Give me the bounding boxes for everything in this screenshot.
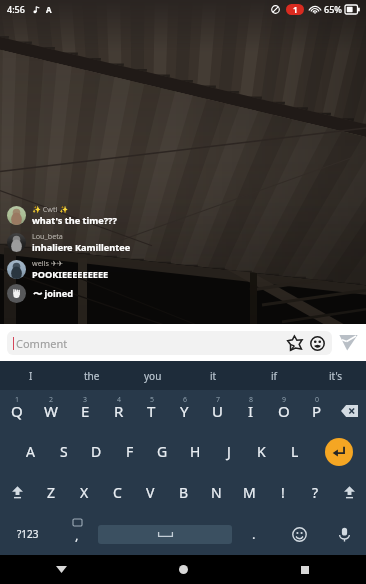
button[interactable]: P [300,390,333,431]
button[interactable]: B [167,472,200,513]
button[interactable]: Emoji [276,513,322,555]
button[interactable]: Comment [7,331,332,355]
button[interactable]: F [113,431,146,472]
staticText: K [257,442,266,461]
button[interactable]: Home [122,555,244,584]
staticText: M [243,483,256,502]
button[interactable]: Emoji [310,336,325,351]
button[interactable]: T [135,390,168,431]
button[interactable]: O [267,390,300,431]
staticText: X [80,483,89,502]
button[interactable]: 〜 joined [7,284,74,303]
staticText: I [29,369,33,383]
staticText: 0 [315,395,320,405]
staticText: if [271,369,278,383]
button[interactable]: Stickers [287,335,303,351]
staticText: T [147,401,156,421]
staticText: Y [180,401,189,421]
staticText: J [227,442,231,461]
button[interactable]: Y [168,390,201,431]
staticText: E [81,401,90,421]
staticText: C [113,483,122,502]
button[interactable]: it [183,361,244,390]
button[interactable]: Z [34,472,68,513]
button[interactable]: Enter [311,431,366,472]
staticText: 〜 joined [33,287,74,300]
button[interactable]: M [233,472,266,513]
button[interactable]: R [102,390,135,431]
button[interactable]: it's [305,361,366,390]
staticText: 7 [216,395,221,405]
button[interactable]: . [232,513,276,555]
button[interactable]: wells ✈✈ [7,258,109,281]
staticText: D [91,442,102,461]
button[interactable]: Voice input [322,513,366,555]
staticText: the [84,369,100,383]
staticText: ✨ Cwtl ✨ [32,204,69,214]
staticText: P [312,401,322,421]
button[interactable]: Back [0,555,122,584]
button[interactable]: ? [299,472,332,513]
button[interactable]: ✨ Cwtl ✨ [7,204,117,227]
staticText: Lou_beta [32,231,63,241]
staticText: O [278,401,290,421]
button[interactable]: ?123 [0,513,56,555]
staticText: what's the time??? [32,214,117,227]
button[interactable]: Shift [332,472,366,513]
staticText: 2 [49,395,54,405]
staticText: V [146,483,155,502]
button[interactable]: Space [98,525,232,544]
staticText: ?123 [17,527,39,541]
button[interactable]: W [34,390,68,431]
staticText: ? [312,483,319,502]
button[interactable]: N [200,472,233,513]
button[interactable]: Send [339,334,358,351]
button[interactable]: ! [266,472,299,513]
staticText: I [248,401,254,421]
button[interactable]: X [68,472,101,513]
button[interactable]: I [234,390,267,431]
button[interactable]: C [101,472,134,513]
button[interactable]: A [13,431,47,472]
staticText: , [75,526,79,544]
staticText: it's [329,369,343,383]
staticText: 5 [150,395,155,405]
staticText: Q [11,401,23,421]
button[interactable]: you [122,361,183,390]
button[interactable]: G [146,431,179,472]
button[interactable]: Q [0,390,34,431]
staticText: inhaliere Kamillentee [32,241,131,254]
staticText: wells ✈✈ [32,258,63,268]
button[interactable]: E [68,390,102,431]
button[interactable]: Recents [244,555,366,584]
button[interactable]: S [47,431,80,472]
button[interactable]: K [245,431,278,472]
button[interactable]: U [201,390,234,431]
staticText: W [44,401,58,421]
button[interactable]: I [0,361,61,390]
staticText: you [144,369,162,383]
staticText: Comment [16,336,68,351]
button[interactable]: Backspace [333,390,366,431]
button[interactable]: if [244,361,305,390]
button[interactable]: V [134,472,167,513]
staticText: ! [281,483,285,502]
button[interactable]: L [278,431,311,472]
staticText: 4:56 [7,3,25,15]
staticText: it [210,369,217,383]
button[interactable]: H [179,431,212,472]
button[interactable]: the [61,361,122,390]
button[interactable]: Lou_beta [7,231,131,254]
staticText: S [60,442,68,461]
staticText: Z [47,483,56,502]
button[interactable]: , [56,513,98,555]
staticText: L [291,442,299,461]
staticText: N [211,483,222,502]
button[interactable]: Shift [0,472,34,513]
staticText: H [190,442,201,461]
staticText: . [252,525,256,543]
button[interactable]: D [80,431,113,472]
button[interactable]: J [212,431,245,472]
staticText: 1 [15,395,20,405]
staticText: A [26,442,35,461]
